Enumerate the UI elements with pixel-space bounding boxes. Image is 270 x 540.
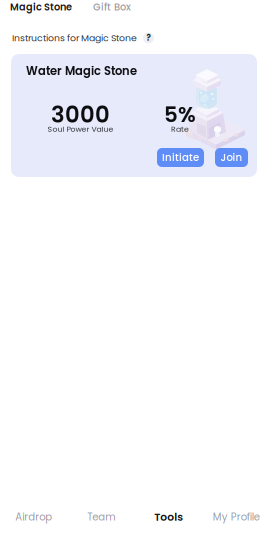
staticText: Soul Power Value: [47, 124, 113, 134]
button[interactable]: Initiate: [157, 148, 204, 167]
staticText: 3000: [51, 99, 110, 130]
staticText: Airdrop: [15, 510, 52, 524]
staticText: Join: [220, 150, 242, 165]
staticText: Team: [87, 510, 115, 524]
button[interactable]: Tools: [135, 500, 202, 534]
button[interactable]: Airdrop: [0, 500, 67, 534]
button[interactable]: Team: [67, 500, 135, 534]
staticText: 5%: [164, 100, 196, 129]
staticText: Rate: [171, 124, 189, 134]
button[interactable]: My Profile: [202, 500, 270, 534]
staticText: Initiate: [162, 150, 199, 165]
button[interactable]: Gift Box: [93, 0, 131, 14]
staticText: Water Magic Stone: [26, 63, 137, 79]
staticText: Tools: [154, 509, 183, 524]
staticText: My Profile: [213, 510, 260, 524]
staticText: Instructions for Magic Stone: [12, 31, 137, 45]
button[interactable]: Join: [215, 148, 248, 167]
staticText: ?: [146, 32, 150, 44]
button[interactable]: Instructions for Magic Stone: [0, 31, 270, 45]
staticText: Magic Stone: [10, 0, 72, 14]
button[interactable]: Magic Stone: [10, 0, 72, 14]
staticText: Gift Box: [93, 0, 131, 14]
